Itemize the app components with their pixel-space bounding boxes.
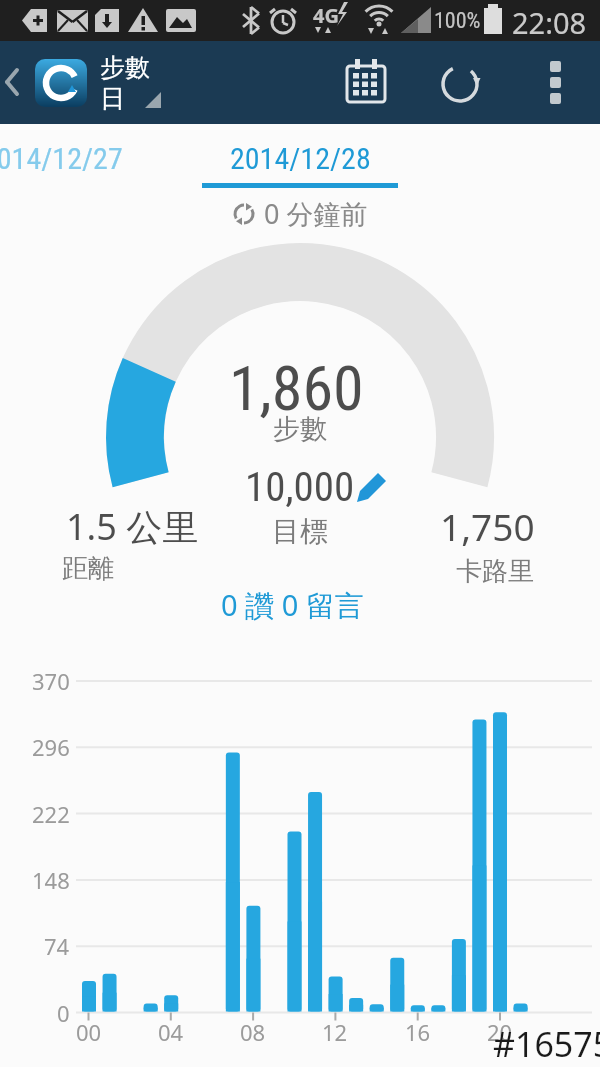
staticText: 1.5 公里: [66, 502, 199, 551]
button[interactable]: [332, 53, 396, 113]
staticText: 12: [322, 1017, 348, 1047]
staticText: 148: [32, 865, 70, 895]
staticText: 222: [32, 799, 70, 829]
staticText: 08: [240, 1017, 266, 1047]
staticText: 距離: [62, 552, 114, 585]
button[interactable]: [0, 41, 30, 124]
staticText: 100%: [434, 8, 481, 34]
staticText: 00: [76, 1017, 102, 1047]
staticText: 步數: [273, 412, 327, 446]
staticText: 目標: [272, 514, 328, 549]
staticText: 74: [44, 931, 70, 961]
button[interactable]: 2014/12/28: [230, 141, 371, 176]
staticText: 20: [487, 1017, 513, 1047]
staticText: 04: [158, 1017, 184, 1047]
button[interactable]: 10,000: [0, 463, 600, 507]
staticText: 296: [32, 732, 70, 762]
staticText: 1,860: [229, 352, 364, 425]
button[interactable]: [430, 53, 490, 113]
staticText: 2014/12/27: [0, 141, 123, 176]
staticText: 0: [57, 998, 70, 1028]
staticText: 日: [100, 83, 125, 114]
staticText: 10,000: [245, 463, 355, 507]
staticText: 0 分鐘前: [264, 195, 368, 232]
staticText: 370: [32, 666, 70, 696]
staticText: 4G: [313, 2, 339, 29]
staticText: 22:08: [512, 3, 587, 42]
button[interactable]: [540, 61, 570, 115]
staticText: #16575: [493, 1021, 600, 1067]
staticText: 步數: [100, 52, 150, 83]
button[interactable]: 步數: [35, 41, 150, 124]
staticText: 1,750: [440, 501, 535, 551]
staticText: 卡路里: [456, 555, 534, 588]
button[interactable]: 0 讚 0 留言: [221, 585, 364, 625]
button[interactable]: 0 分鐘前: [233, 195, 368, 232]
staticText: 16: [405, 1017, 431, 1047]
